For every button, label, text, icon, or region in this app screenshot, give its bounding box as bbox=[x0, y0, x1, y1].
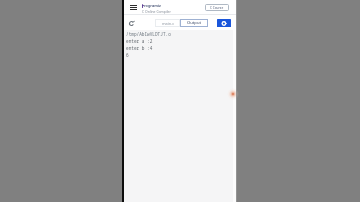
button[interactable]: Help bbox=[227, 88, 239, 100]
staticText: 6 bbox=[126, 52, 129, 59]
button[interactable]: Run bbox=[217, 19, 231, 27]
button[interactable]: main.c bbox=[155, 19, 180, 27]
staticText: enter b :4 bbox=[126, 45, 153, 52]
staticText: C Online Compiler bbox=[142, 9, 171, 14]
staticText: rogramiz bbox=[144, 3, 161, 8]
button[interactable]: Output bbox=[180, 19, 208, 27]
button[interactable]: C Course bbox=[205, 4, 229, 11]
button[interactable]: Menu bbox=[128, 3, 139, 12]
staticText: Output bbox=[187, 20, 202, 26]
staticText: enter a :2 bbox=[126, 38, 153, 45]
staticText: C Course bbox=[210, 6, 224, 10]
button[interactable]: Refresh bbox=[127, 19, 136, 28]
staticText: main.c bbox=[162, 21, 174, 26]
staticText: /tmp/AbIwVLDTJT.o bbox=[126, 31, 171, 38]
